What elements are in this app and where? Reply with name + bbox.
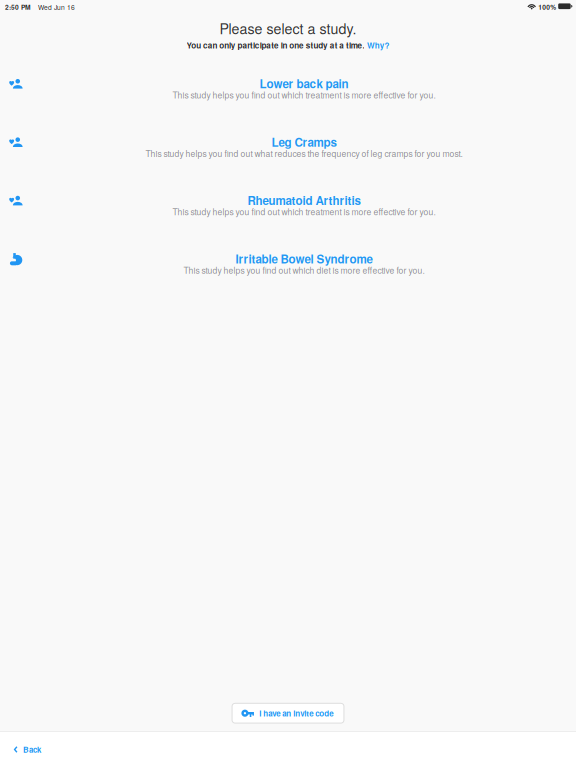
staticText: Irritable Bowel Syndrome bbox=[235, 250, 372, 267]
staticText: This study helps you find out which diet… bbox=[183, 264, 424, 276]
staticText: This study helps you find out what reduc… bbox=[145, 147, 462, 159]
staticText: Rheumatoid Arthritis bbox=[247, 192, 360, 209]
button[interactable]: Rheumatoid Arthritis bbox=[0, 177, 576, 235]
staticText: Back bbox=[23, 744, 41, 755]
staticText: 100% bbox=[538, 2, 556, 12]
staticText: I have an invite code bbox=[259, 707, 333, 719]
staticText: 2:50 PM bbox=[5, 2, 31, 12]
button[interactable]: Back bbox=[0, 731, 51, 768]
button[interactable]: Why? bbox=[367, 39, 389, 51]
staticText: This study helps you find out which trea… bbox=[172, 205, 435, 218]
staticText: Please select a study. bbox=[219, 18, 356, 38]
button[interactable]: Leg Cramps bbox=[0, 118, 576, 177]
staticText: Lower back pain bbox=[259, 75, 348, 92]
staticText: Wed Jun 16 bbox=[38, 2, 75, 12]
staticText: Leg Cramps bbox=[271, 134, 336, 150]
staticText: Why? bbox=[367, 39, 389, 51]
button[interactable]: Irritable Bowel Syndrome bbox=[0, 235, 576, 294]
button[interactable]: I have an invite code bbox=[232, 703, 344, 723]
staticText: This study helps you find out which trea… bbox=[172, 89, 435, 101]
staticText: You can only participate in one study at… bbox=[186, 39, 364, 51]
button[interactable]: Lower back pain bbox=[0, 60, 576, 118]
